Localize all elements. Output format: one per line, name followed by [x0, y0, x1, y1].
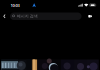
button[interactable]: Photo — [74, 59, 86, 70]
button[interactable]: Rock photo — [18, 59, 32, 70]
staticText: 메시지 검색 — [17, 14, 38, 19]
button[interactable]: Back — [0, 11, 9, 21]
button[interactable]: Night photo — [86, 59, 99, 70]
button[interactable]: Portrait photo — [48, 59, 61, 70]
button[interactable]: 메시지 검색 — [10, 13, 81, 20]
button[interactable]: Doorway photo — [32, 59, 38, 70]
button[interactable]: Camera — [85, 11, 96, 21]
button[interactable]: Photo — [61, 59, 74, 70]
button[interactable]: Waterfall photo — [1, 59, 18, 70]
button[interactable]: Photo — [38, 59, 48, 70]
staticText: 10:03 — [10, 3, 19, 8]
